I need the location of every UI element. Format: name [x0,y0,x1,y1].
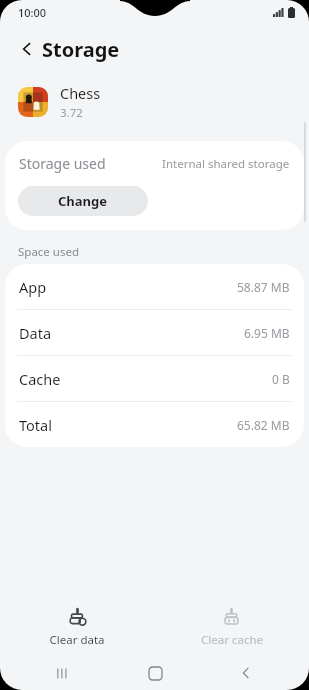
staticText: Clear data [49,632,105,648]
staticText: Storage used [19,154,106,173]
staticText: Chess [60,83,101,103]
staticText: 58.87 MB [237,279,290,295]
staticText: App [19,277,47,297]
staticText: Clear cache [201,632,263,648]
staticText: 0 B [272,371,290,387]
button[interactable]: Change [18,186,148,216]
staticText: Storage [42,36,120,63]
button[interactable]: Home [140,658,170,688]
staticText: 65.82 MB [237,417,290,433]
staticText: Data [19,323,52,343]
staticText: Internal shared storage [162,156,290,172]
button[interactable]: Clear data [0,600,154,648]
staticText: Space used [18,244,80,260]
button[interactable]: Back [10,32,44,66]
staticText: 10:00 [18,5,47,20]
staticText: Total [19,415,52,435]
staticText: 6.95 MB [244,325,290,341]
button[interactable]: Cache [5,356,304,401]
staticText: Cache [19,369,61,389]
button[interactable]: Data [5,310,304,355]
button[interactable]: Clear cache [154,600,309,648]
button[interactable]: Recents [48,658,78,688]
staticText: 3.72 [60,105,83,121]
button[interactable]: App [5,264,304,309]
staticText: Change [58,192,108,210]
button[interactable]: Back [231,658,261,688]
